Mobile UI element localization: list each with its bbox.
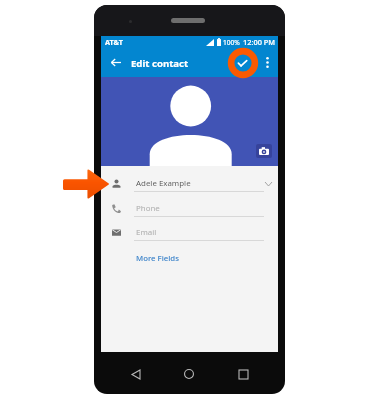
button[interactable]: Recent apps	[236, 367, 250, 381]
button[interactable]: Save contact	[233, 54, 252, 73]
button[interactable]: Phone	[101, 200, 278, 222]
staticText: 12:00 PM	[243, 37, 276, 47]
button[interactable]: Change photo	[256, 144, 272, 158]
staticText: Phone	[136, 203, 160, 214]
button[interactable]: More Fields	[134, 251, 181, 266]
button[interactable]: Back	[129, 367, 143, 381]
staticText: Edit contact	[131, 57, 189, 70]
staticText: More Fields	[136, 253, 179, 264]
other: Save highlight	[227, 47, 259, 79]
button[interactable]: Email	[101, 224, 278, 246]
button[interactable]: Home	[182, 367, 196, 381]
button[interactable]: Adele Example	[101, 175, 278, 197]
button[interactable]: Back	[106, 53, 125, 72]
staticText: Email	[136, 227, 157, 238]
staticText: 100%	[223, 38, 240, 47]
staticText: AT&T	[105, 37, 123, 47]
staticText: Adele Example	[136, 178, 191, 189]
button[interactable]: More options	[259, 54, 275, 70]
